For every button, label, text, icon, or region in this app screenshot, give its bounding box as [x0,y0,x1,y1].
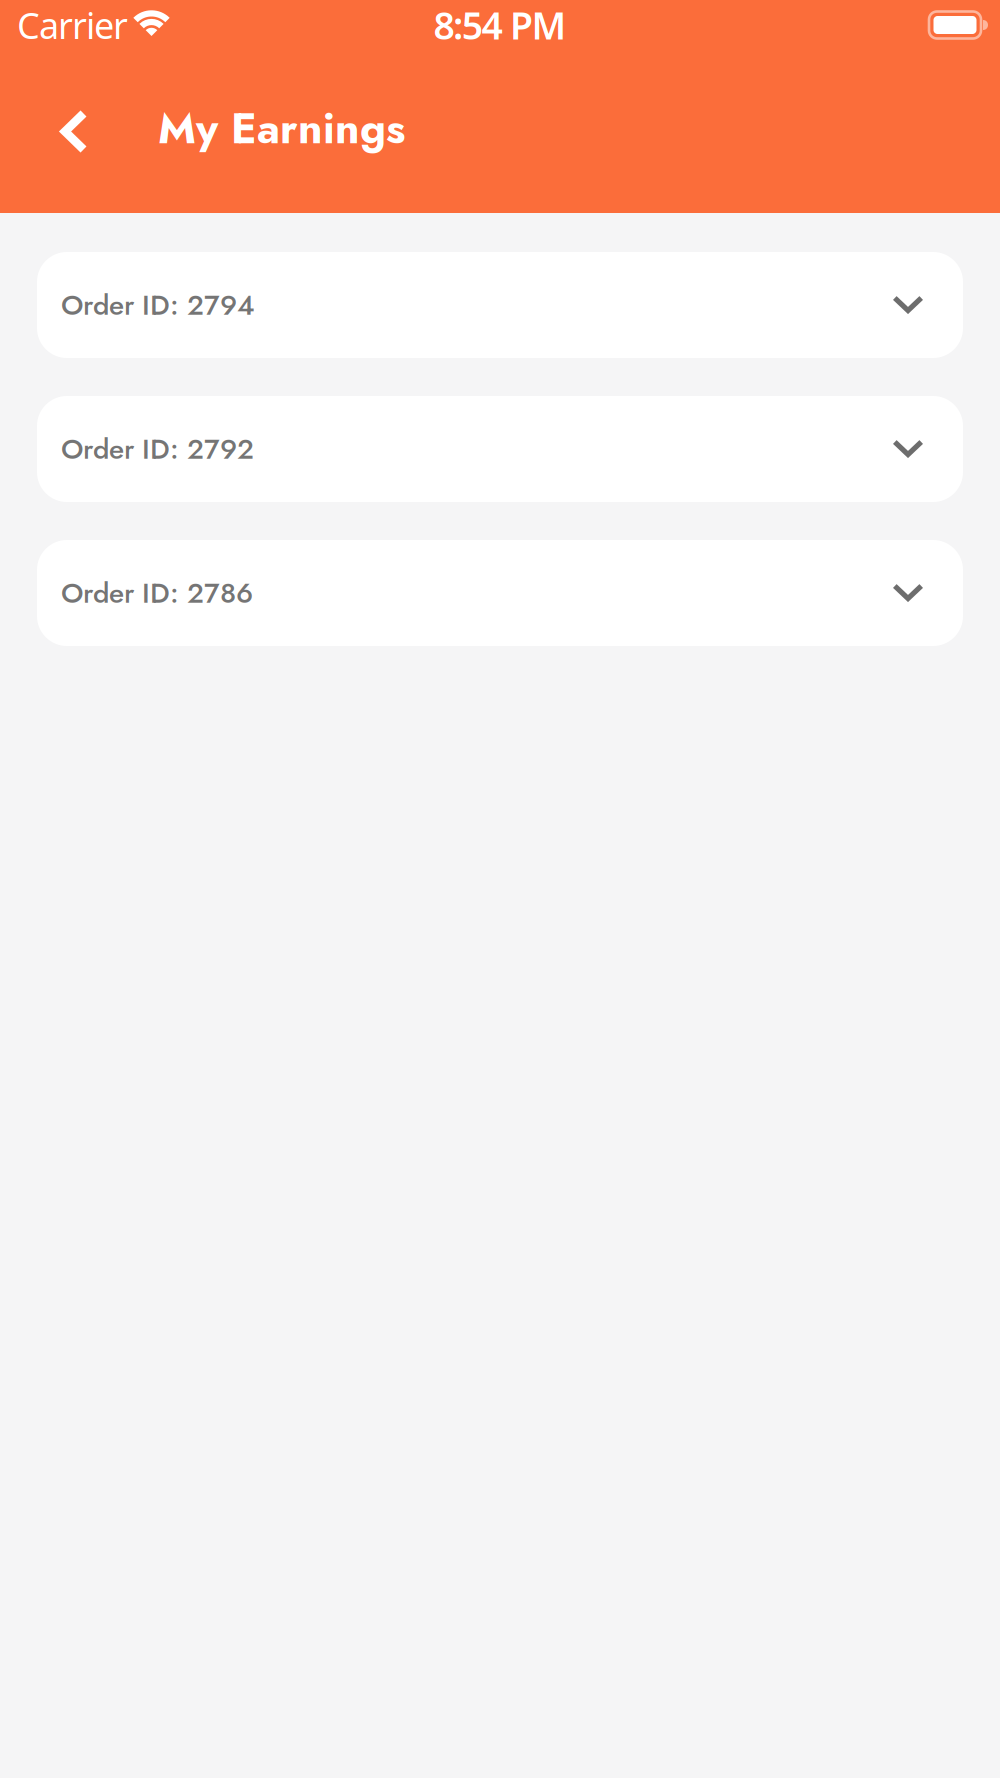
button[interactable]: Order ID: 2786 [37,540,963,646]
button[interactable]: Order ID: 2794 [37,252,963,358]
staticText: 8:54 PM [433,0,567,50]
staticText: My Earnings [158,98,405,159]
staticText: Order ID: 2794 [61,285,255,325]
staticText: Carrier [17,1,128,49]
button[interactable]: Order ID: 2792 [37,396,963,502]
staticText: Order ID: 2786 [61,573,253,613]
staticText: Order ID: 2792 [61,429,254,469]
button[interactable]: Back [0,111,87,151]
